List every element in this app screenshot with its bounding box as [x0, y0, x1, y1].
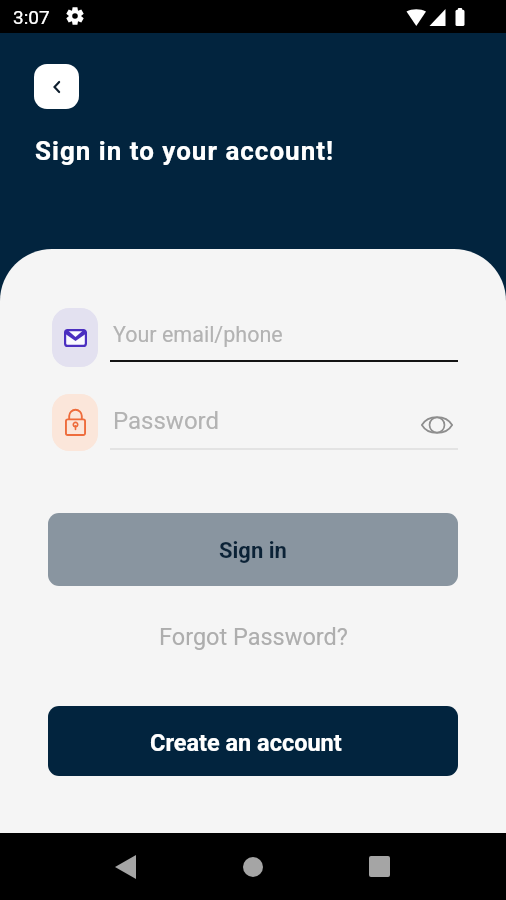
button[interactable]: Recent apps [316, 833, 443, 900]
staticText: Sign in to your account! [35, 136, 335, 166]
staticText: Sign in [219, 538, 287, 564]
staticText: Your email/phone [113, 322, 283, 347]
staticText: Password [113, 407, 220, 435]
button[interactable]: Forgot Password? [147, 617, 360, 657]
button[interactable]: Sign in [48, 513, 458, 586]
button[interactable]: Back [34, 64, 79, 109]
button[interactable]: Home [189, 833, 316, 900]
button[interactable]: Create an account [48, 706, 458, 776]
staticText: Forgot Password? [159, 623, 348, 651]
staticText: 3:07 [13, 6, 50, 28]
button[interactable]: Show password [420, 409, 454, 441]
button[interactable]: Back [62, 833, 189, 900]
staticText: Create an account [150, 729, 342, 757]
